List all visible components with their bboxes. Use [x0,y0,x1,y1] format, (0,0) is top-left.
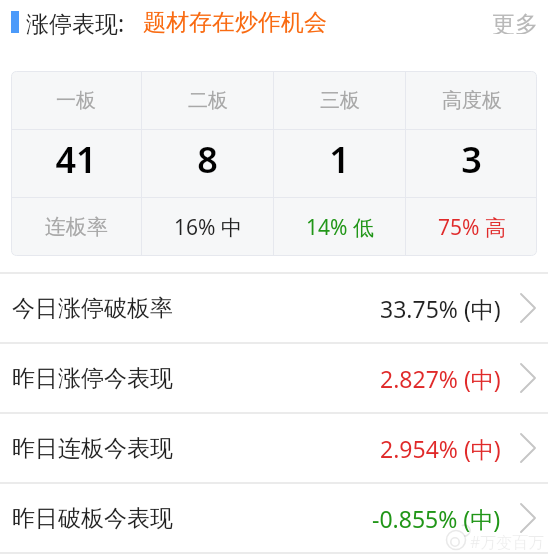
staticText: 连板率 [45,214,108,240]
button[interactable]: 昨日连板今表现 [0,414,548,484]
staticText: 75% 高 [438,213,506,242]
button[interactable]: 今日涨停破板率 [0,274,548,344]
other: 查看详情 [520,503,536,533]
staticText: #万变百万 [470,531,545,553]
other: 查看详情 [520,293,536,323]
staticText: 昨日涨停今表现 [12,364,173,393]
staticText: 41 [55,135,97,184]
staticText: 二板 [188,88,228,113]
button[interactable]: 更多 [478,0,548,44]
staticText: 2.827% (中) [380,363,501,394]
staticText: -0.855% (中) [372,503,501,534]
staticText: 14% 低 [306,213,374,242]
staticText: 8 [197,135,218,184]
staticText: 昨日连板今表现 [12,434,173,463]
button[interactable]: 昨日破板今表现 [0,484,548,554]
staticText: 3 [461,135,482,184]
button[interactable]: 昨日涨停今表现 [0,344,548,414]
staticText: 更多 [492,10,538,34]
staticText: 2.954% (中) [380,433,501,464]
staticText: 高度板 [442,88,502,113]
staticText: 题材存在炒作机会 [143,8,327,37]
staticText: 16% 中 [174,213,242,242]
staticText: 一板 [56,88,96,113]
staticText: 涨停表现: [26,7,125,38]
other: 查看详情 [520,363,536,393]
staticText: 1 [329,135,350,184]
staticText: 昨日破板今表现 [12,504,173,533]
staticText: 三板 [320,88,360,113]
other: 查看详情 [520,433,536,463]
staticText: 33.75% (中) [380,293,501,324]
staticText: 今日涨停破板率 [12,294,173,323]
